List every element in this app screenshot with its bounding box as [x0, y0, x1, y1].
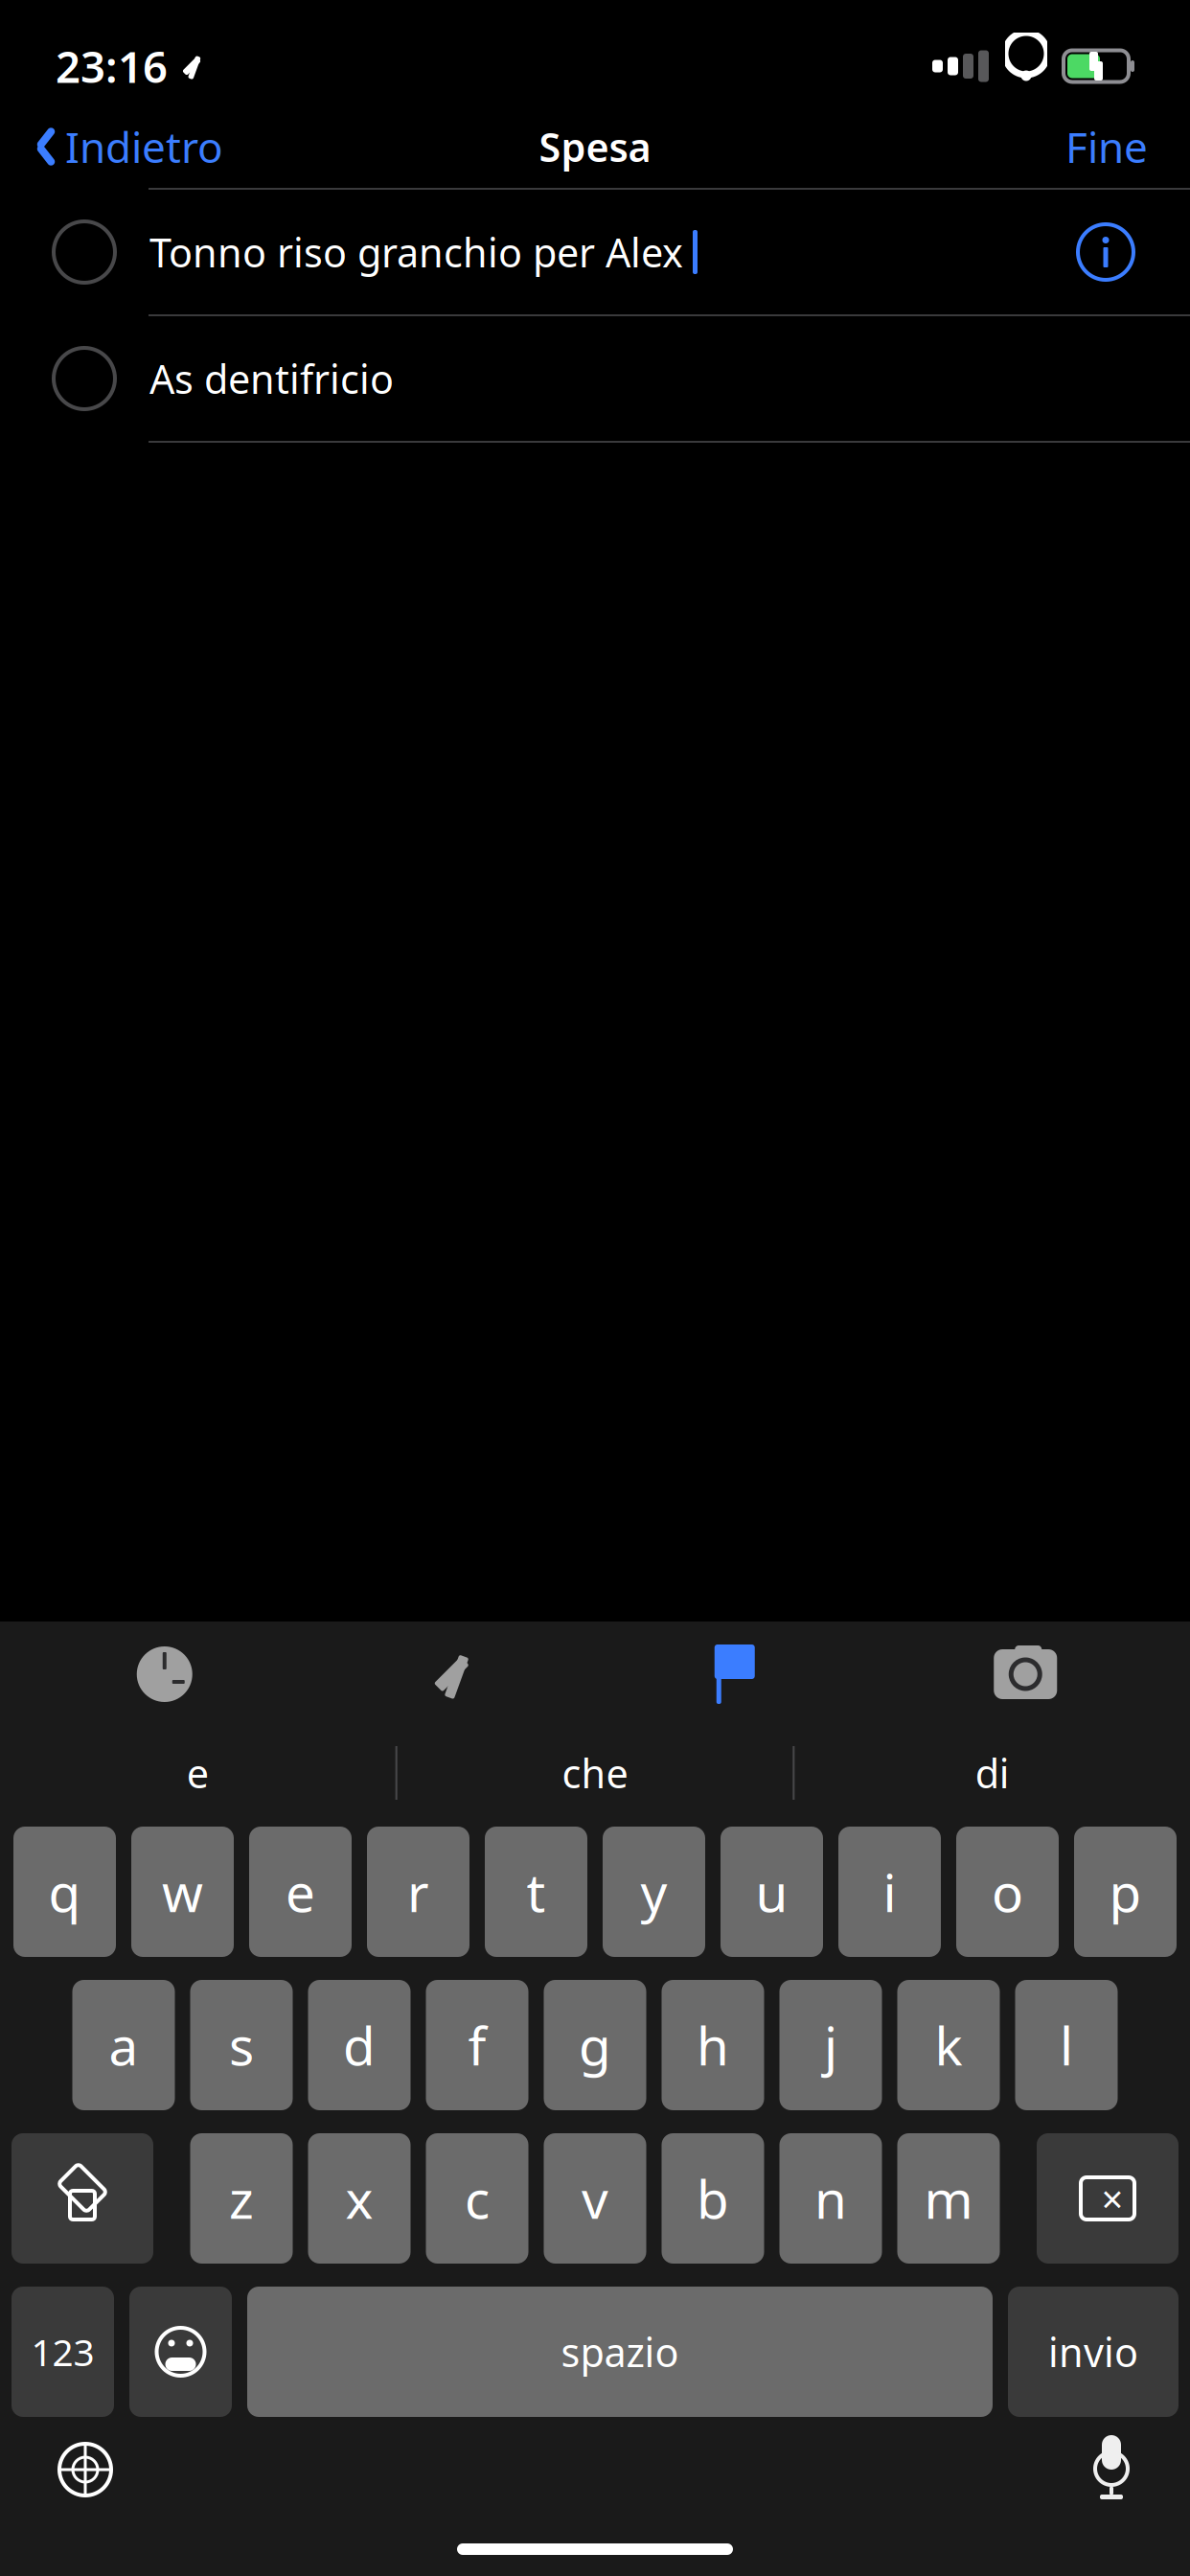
button[interactable]: s: [190, 1980, 293, 2110]
staticText: a: [109, 2010, 138, 2080]
button[interactable]: e: [0, 1727, 395, 1819]
button[interactable]: y: [603, 1827, 705, 1957]
button[interactable]: Fine: [1037, 105, 1177, 188]
button[interactable]: g: [544, 1980, 646, 2110]
button[interactable]: Bandiera: [595, 1621, 882, 1727]
button[interactable]: d: [308, 1980, 411, 2110]
staticText: che: [562, 1747, 628, 1799]
staticText: b: [697, 2164, 729, 2233]
staticText: 23:16: [56, 37, 168, 95]
button[interactable]: l: [1015, 1980, 1118, 2110]
button[interactable]: Posizione: [308, 1621, 595, 1727]
staticText: q: [48, 1857, 81, 1927]
button[interactable]: i: [838, 1827, 941, 1957]
button[interactable]: di: [795, 1727, 1190, 1819]
button[interactable]: Elimina: [1037, 2133, 1179, 2264]
staticText: v: [582, 2164, 608, 2233]
button[interactable]: a: [72, 1980, 175, 2110]
staticText: i: [883, 1857, 896, 1927]
button[interactable]: x: [308, 2133, 411, 2264]
button[interactable]: f: [426, 1980, 528, 2110]
staticText: w: [162, 1857, 203, 1927]
staticText: ×: [1101, 2173, 1123, 2224]
button[interactable]: Indietro: [13, 105, 244, 188]
staticText: h: [697, 2010, 729, 2080]
staticText: t: [526, 1857, 546, 1927]
button[interactable]: n: [779, 2133, 882, 2264]
staticText: p: [1109, 1857, 1142, 1927]
button[interactable]: spazio: [247, 2287, 993, 2417]
button[interactable]: p: [1074, 1827, 1177, 1957]
staticText: z: [229, 2164, 254, 2233]
button[interactable]: Emoji: [129, 2287, 232, 2417]
staticText: j: [824, 2010, 837, 2080]
staticText: y: [641, 1857, 667, 1927]
staticText: u: [755, 1857, 788, 1927]
button[interactable]: Data e ora: [21, 1621, 308, 1727]
staticText: s: [229, 2010, 254, 2080]
staticText: e: [187, 1747, 209, 1799]
staticText: m: [924, 2164, 973, 2233]
button[interactable]: v: [544, 2133, 646, 2264]
staticText: r: [407, 1857, 429, 1927]
button[interactable]: c: [426, 2133, 528, 2264]
staticText: e: [286, 1857, 315, 1927]
staticText: Tonno riso granchio per Alex: [149, 226, 683, 278]
button[interactable]: Dettatura: [1062, 2417, 1161, 2522]
staticText: o: [992, 1857, 1023, 1927]
button[interactable]: j: [779, 1980, 882, 2110]
button[interactable]: Tonno riso granchio per Alex: [0, 190, 1190, 316]
staticText: Indietro: [65, 119, 223, 175]
staticText: d: [343, 2010, 376, 2080]
button[interactable]: h: [662, 1980, 764, 2110]
button[interactable]: e: [249, 1827, 352, 1957]
button[interactable]: k: [897, 1980, 1000, 2110]
button[interactable]: u: [721, 1827, 823, 1957]
button[interactable]: t: [485, 1827, 587, 1957]
staticText: k: [935, 2010, 962, 2080]
button[interactable]: m: [897, 2133, 1000, 2264]
staticText: x: [345, 2164, 373, 2233]
button[interactable]: b: [662, 2133, 764, 2264]
button[interactable]: z: [190, 2133, 293, 2264]
staticText: Fine: [1065, 119, 1148, 175]
button[interactable]: Cambia tastiera: [29, 2417, 142, 2522]
staticText: invio: [1048, 2325, 1138, 2378]
staticText: g: [579, 2010, 611, 2080]
staticText: n: [814, 2164, 847, 2233]
staticText: c: [465, 2164, 490, 2233]
button[interactable]: 123: [11, 2287, 114, 2417]
button[interactable]: r: [367, 1827, 469, 1957]
staticText: As dentifricio: [149, 352, 394, 405]
button[interactable]: Maiuscole: [11, 2133, 153, 2264]
staticText: Spesa: [539, 120, 651, 173]
button[interactable]: Fotocamera: [882, 1621, 1169, 1727]
button[interactable]: invio: [1008, 2287, 1179, 2417]
button[interactable]: As dentifricio: [0, 316, 1190, 443]
button[interactable]: q: [13, 1827, 116, 1957]
staticText: di: [975, 1747, 1010, 1799]
staticText: l: [1060, 2010, 1073, 2080]
button[interactable]: w: [131, 1827, 234, 1957]
staticText: 123: [31, 2327, 94, 2376]
staticText: f: [468, 2010, 486, 2080]
staticText: spazio: [561, 2325, 679, 2378]
button[interactable]: o: [956, 1827, 1059, 1957]
button[interactable]: che: [397, 1727, 793, 1819]
